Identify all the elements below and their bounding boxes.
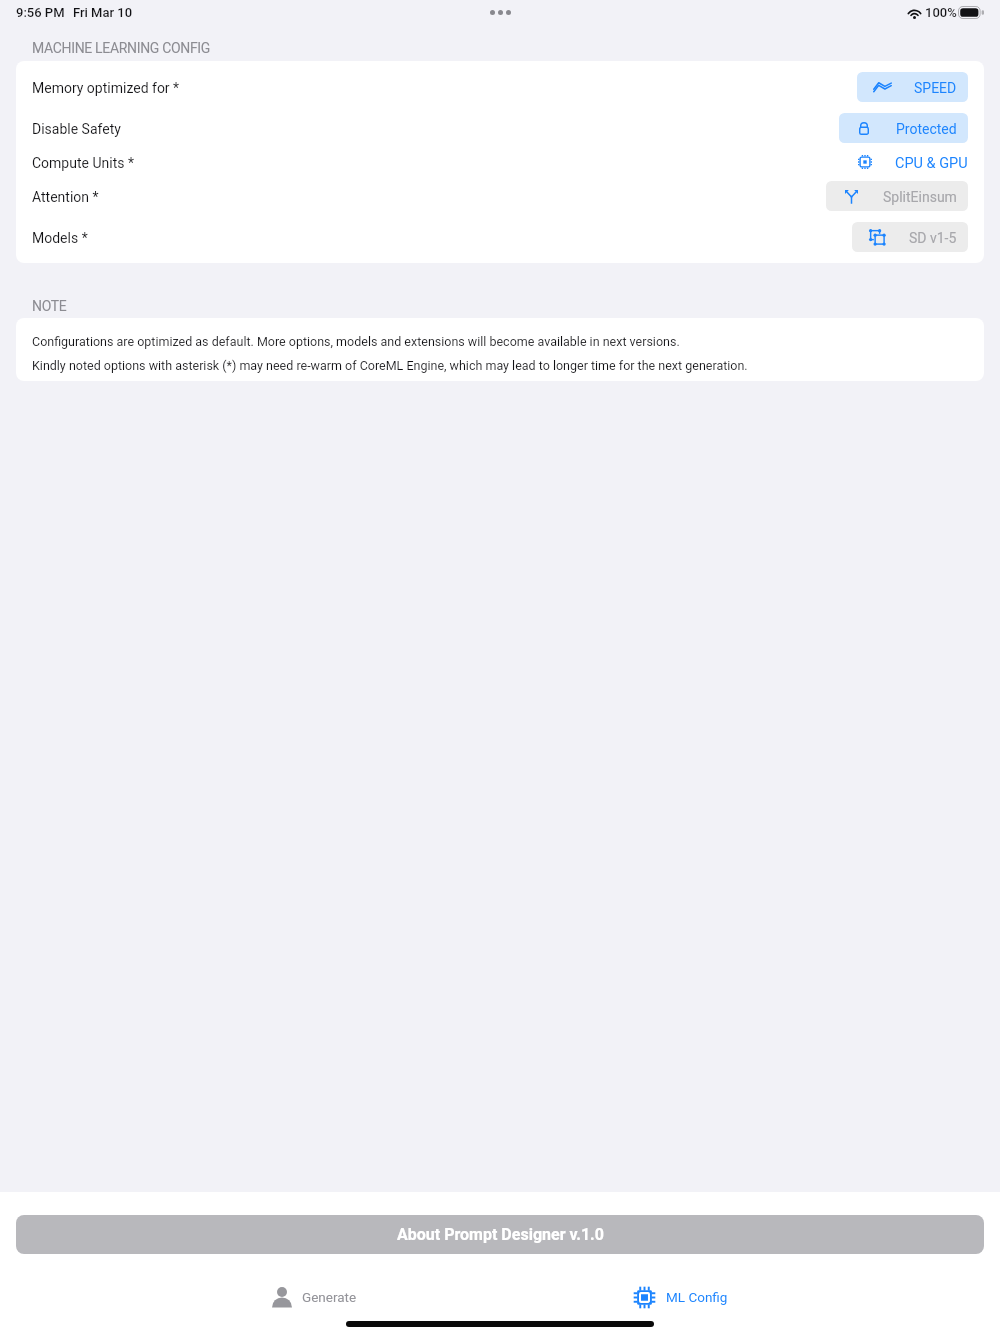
button[interactable]: Memory optimized for *: [16, 63, 984, 111]
staticText: SplitEinsum: [883, 189, 957, 205]
button[interactable]: ML Config: [631, 1276, 730, 1318]
staticText: MACHINE LEARNING CONFIG: [32, 40, 210, 56]
button[interactable]: Generate: [270, 1276, 359, 1318]
staticText: CPU & GPU: [895, 155, 968, 172]
button[interactable]: Disable Safety: [16, 111, 984, 145]
button[interactable]: SplitEinsum: [826, 181, 968, 211]
staticText: SD v1-5: [909, 230, 957, 246]
staticText: About Prompt Designer v.1.0: [397, 1225, 604, 1244]
button[interactable]: CPU and GPU: [857, 147, 968, 177]
staticText: Disable Safety: [32, 121, 121, 137]
staticText: Models *: [32, 230, 88, 246]
other: Speed: [874, 79, 890, 95]
staticText: Memory optimized for *: [32, 80, 180, 96]
button[interactable]: SD v1-5: [852, 222, 968, 252]
button[interactable]: About Prompt Designer v.1.0: [16, 1215, 984, 1254]
button[interactable]: Models *: [16, 213, 984, 261]
other: CPU and GPU: [857, 154, 873, 170]
other: SD v1-5: [869, 229, 885, 245]
staticText: Configurations are optimized as default.…: [32, 334, 748, 373]
button[interactable]: Protected: [839, 113, 968, 143]
button[interactable]: Attention *: [16, 179, 984, 213]
button[interactable]: Compute Units *: [16, 145, 984, 179]
staticText: Attention *: [32, 189, 99, 205]
other: SplitEinsum: [843, 188, 859, 204]
staticText: Fri Mar 10: [73, 5, 133, 20]
staticText: NOTE: [32, 298, 67, 314]
other: Protected: [856, 120, 872, 136]
staticText: 9:56 PM: [16, 5, 65, 20]
staticText: SPEED: [914, 80, 957, 96]
staticText: Generate: [302, 1289, 357, 1305]
button[interactable]: Speed: [857, 72, 968, 102]
staticText: Compute Units *: [32, 155, 134, 171]
staticText: 100%: [925, 5, 957, 20]
staticText: Protected: [896, 121, 957, 137]
staticText: ML Config: [666, 1289, 728, 1305]
